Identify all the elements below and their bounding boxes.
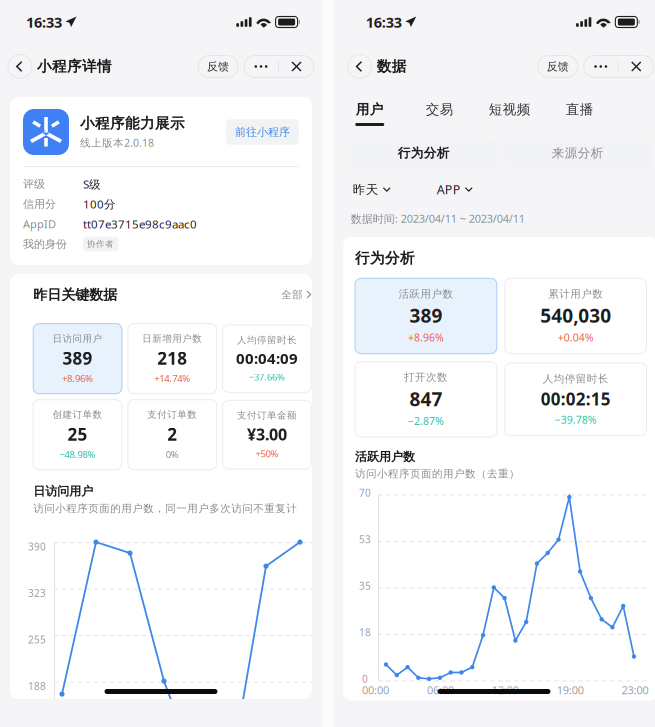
staticText: 389 <box>63 347 93 370</box>
staticText: +8.96% <box>408 330 444 345</box>
staticText: 访问小程序页面的用户数（去重） <box>355 467 520 480</box>
button[interactable]: Back <box>348 54 372 78</box>
staticText: AppID <box>23 216 56 231</box>
staticText: 日新增用户数 <box>142 333 202 345</box>
button[interactable]: Back <box>8 54 32 78</box>
staticText: 00:04:09 <box>236 348 298 368</box>
staticText: 0% <box>166 448 179 461</box>
staticText: −2.87% <box>408 414 444 428</box>
staticText: 日访问用户 <box>33 484 93 499</box>
staticText: +14.74% <box>154 372 190 385</box>
staticText: 53 <box>359 533 371 546</box>
button[interactable]: More <box>584 55 618 77</box>
staticText: 人均停留时长 <box>237 334 297 346</box>
staticText: 23:00 <box>621 682 648 697</box>
staticText: 支付订单金额 <box>237 409 297 421</box>
staticText: tt07e3715e98c9aac0 <box>83 216 197 232</box>
staticText: 全部 <box>281 288 303 301</box>
staticText: 00:00 <box>362 682 389 697</box>
staticText: 信用分 <box>23 197 56 211</box>
staticText: 16:33 <box>26 12 62 32</box>
staticText: 行为分析 <box>355 249 415 267</box>
staticText: 12:00 <box>492 682 519 697</box>
staticText: 100分 <box>83 196 116 212</box>
staticText: −48.98% <box>60 448 96 461</box>
staticText: 交易 <box>426 101 454 118</box>
staticText: 847 <box>409 386 442 412</box>
staticText: 打开次数 <box>404 371 448 384</box>
staticText: 短视频 <box>489 101 531 118</box>
staticText: 18 <box>359 626 371 639</box>
button[interactable]: 用户 <box>335 91 405 126</box>
staticText: 2 <box>167 423 177 446</box>
staticText: 390 <box>28 540 46 553</box>
staticText: 389 <box>409 302 442 328</box>
button[interactable]: 直播 <box>545 91 615 126</box>
staticText: 小程序详情 <box>37 57 112 76</box>
staticText: +0.04% <box>558 330 594 345</box>
staticText: APP <box>437 181 461 198</box>
button[interactable]: 交易 <box>405 91 475 126</box>
staticText: 用户 <box>356 101 384 118</box>
button[interactable]: Close <box>279 55 314 77</box>
staticText: 昨天 <box>353 182 379 197</box>
staticText: 来源分析 <box>552 145 604 161</box>
staticText: 06:00 <box>427 682 454 697</box>
staticText: 线上版本2.0.18 <box>80 135 154 150</box>
staticText: 19:00 <box>557 682 584 697</box>
button[interactable]: 短视频 <box>475 91 545 126</box>
button[interactable]: 行为分析 <box>351 138 497 168</box>
staticText: 我的身份 <box>23 237 67 251</box>
staticText: 人均停留时长 <box>543 372 609 385</box>
staticText: 支付订单数 <box>147 409 197 421</box>
button[interactable]: 反馈 <box>538 55 578 77</box>
button[interactable]: APP <box>437 181 473 198</box>
button[interactable]: 来源分析 <box>505 138 651 168</box>
button[interactable]: 昨天 <box>353 182 391 197</box>
staticText: 累计用户数 <box>548 287 603 300</box>
staticText: 反馈 <box>207 60 229 73</box>
staticText: 数据 <box>377 57 407 76</box>
staticText: 活跃用户数 <box>398 287 453 300</box>
staticText: S级 <box>83 176 101 192</box>
staticText: 255 <box>28 633 46 646</box>
staticText: 昨日关键数据 <box>33 286 117 304</box>
staticText: 323 <box>28 586 46 600</box>
button[interactable]: Close <box>619 55 654 77</box>
staticText: 25 <box>68 423 88 446</box>
staticText: 行为分析 <box>398 145 450 161</box>
staticText: 0 <box>362 672 368 686</box>
button[interactable]: 反馈 <box>198 55 238 77</box>
staticText: 188 <box>28 679 46 693</box>
staticText: 00:02:15 <box>541 387 611 410</box>
staticText: 数据时间: 2023/04/11 ~ 2023/04/11 <box>351 211 525 226</box>
staticText: ¥3.00 <box>247 423 287 445</box>
staticText: −39.78% <box>555 412 597 427</box>
staticText: 218 <box>157 347 187 370</box>
staticText: 直播 <box>566 101 594 118</box>
button[interactable]: More <box>244 55 278 77</box>
staticText: 70 <box>359 486 371 500</box>
staticText: 评级 <box>23 177 45 191</box>
button[interactable]: 前往小程序 <box>226 119 299 145</box>
staticText: 16:33 <box>366 12 402 32</box>
staticText: −37.66% <box>249 370 285 383</box>
staticText: 小程序能力展示 <box>80 114 185 132</box>
staticText: 日访问用户 <box>53 333 103 345</box>
staticText: +8.96% <box>62 372 93 385</box>
staticText: 创建订单数 <box>53 409 103 421</box>
staticText: 540,030 <box>540 302 611 328</box>
staticText: 访问小程序页面的用户数，同一用户多次访问不重复计 <box>33 502 297 515</box>
staticText: 活跃用户数 <box>355 449 415 464</box>
staticText: 反馈 <box>547 60 569 73</box>
staticText: +50% <box>255 447 278 460</box>
staticText: 协作者 <box>87 239 114 249</box>
button[interactable]: 全部 <box>281 288 311 301</box>
staticText: 35 <box>359 579 371 593</box>
staticText: 前往小程序 <box>235 125 290 139</box>
